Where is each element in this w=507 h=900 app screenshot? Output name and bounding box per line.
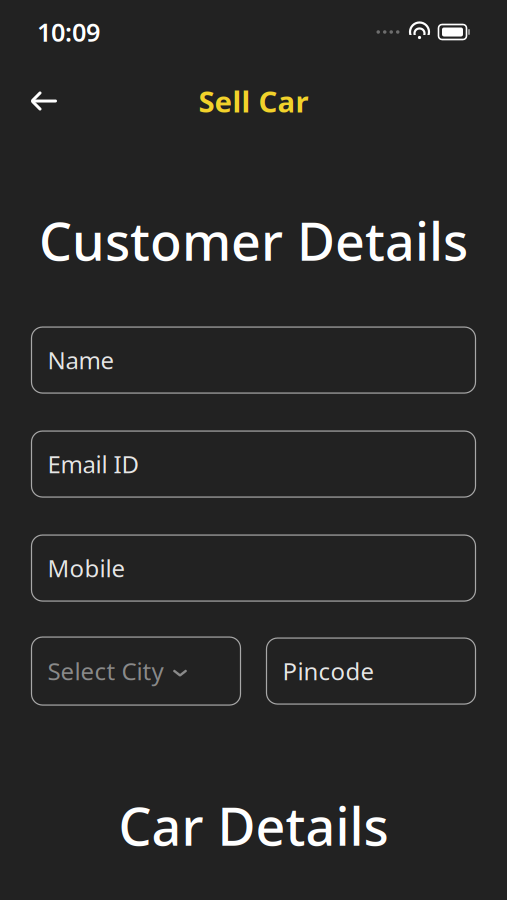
button[interactable]: Mobile <box>31 535 475 601</box>
staticText: Email ID <box>47 448 139 480</box>
button[interactable]: Pincode <box>266 638 475 704</box>
staticText: Car Details <box>118 791 388 860</box>
staticText: Customer Details <box>39 206 468 275</box>
button[interactable]: Select City <box>31 637 240 705</box>
button[interactable]: Back <box>19 79 69 123</box>
staticText: Pincode <box>282 655 374 687</box>
button[interactable]: Name <box>31 327 475 393</box>
staticText: Sell Car <box>198 81 308 120</box>
staticText: Name <box>47 344 114 376</box>
staticText: Mobile <box>47 552 125 584</box>
button[interactable]: Email ID <box>31 431 475 497</box>
staticText: 10:09 <box>37 15 100 49</box>
staticText: Select City <box>47 655 163 687</box>
